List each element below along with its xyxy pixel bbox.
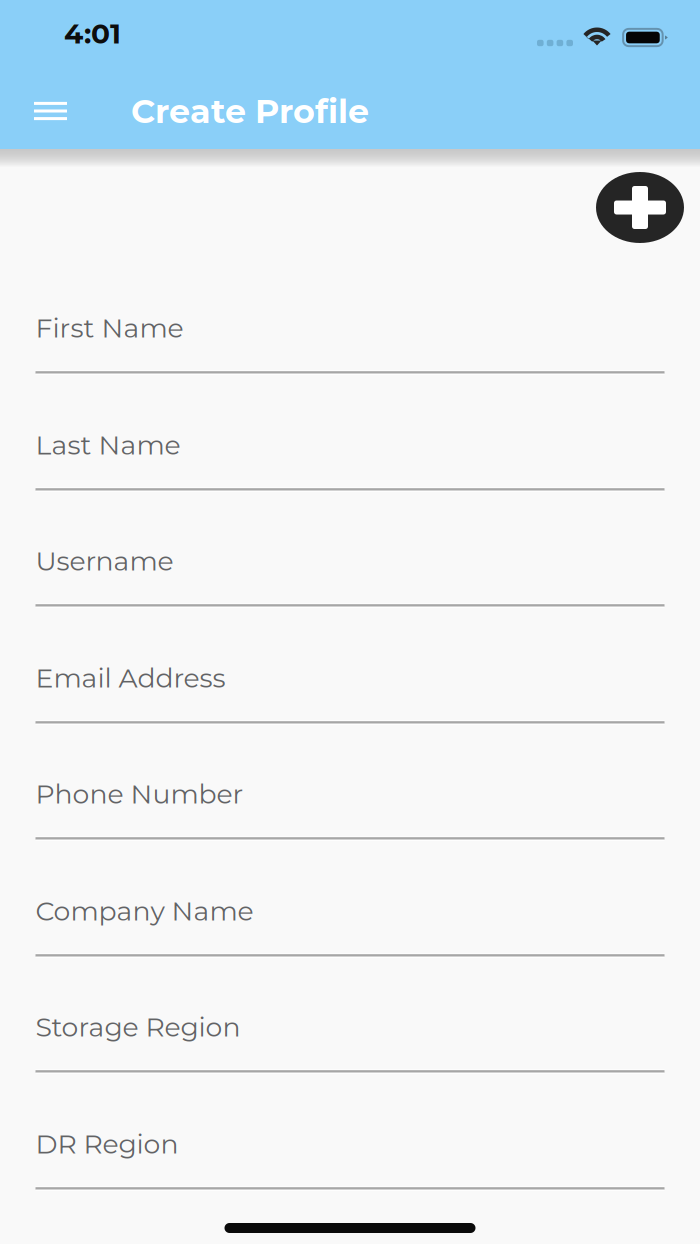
staticText: Username: [35, 545, 173, 577]
button[interactable]: First Name: [35, 259, 664, 375]
button[interactable]: Storage Region: [35, 958, 664, 1074]
button[interactable]: DR Region: [35, 1074, 664, 1191]
staticText: First Name: [35, 312, 183, 344]
staticText: Email Address: [35, 662, 225, 694]
button[interactable]: Menu: [34, 98, 97, 124]
button[interactable]: Last Name: [35, 375, 664, 492]
staticText: Phone Number: [35, 778, 243, 810]
staticText: Storage Region: [35, 1011, 240, 1043]
button[interactable]: Add: [596, 172, 684, 243]
button[interactable]: Company Name: [35, 841, 664, 958]
staticText: DR Region: [35, 1128, 178, 1160]
staticText: 4:01: [64, 16, 121, 50]
button[interactable]: Phone Number: [35, 725, 664, 841]
staticText: Last Name: [35, 429, 180, 461]
staticText: Company Name: [35, 895, 253, 927]
button[interactable]: Email Address: [35, 608, 664, 725]
staticText: Create Profile: [131, 91, 369, 131]
button[interactable]: Username: [35, 492, 664, 608]
